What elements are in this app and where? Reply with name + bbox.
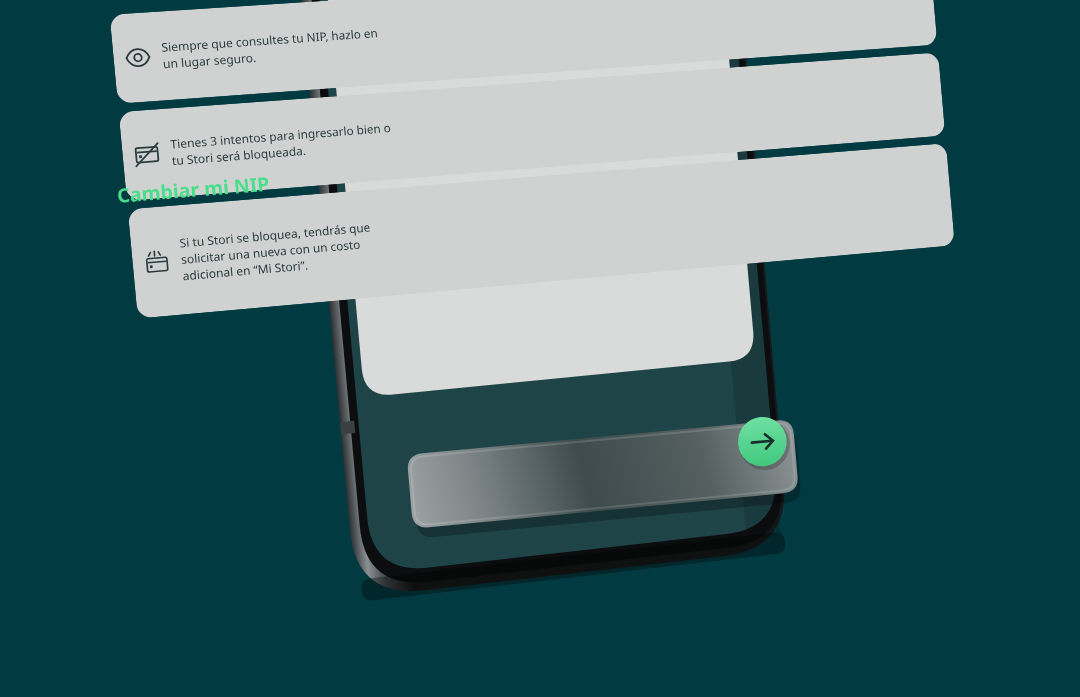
staticText: Si tu Stori se bloquea, tendrás que [179,219,371,252]
staticText: tu Stori será bloqueada. [171,142,308,169]
button[interactable]: Cambiar mi NIP [116,110,1080,697]
button[interactable]: Cambiar mi NIP [0,0,1080,697]
staticText: un lugar seguro. [162,49,257,72]
button[interactable]: Siempre que consultes tu NIP, hazlo en [109,0,937,104]
staticText: solicitar una nueva con un costo [180,236,361,268]
staticText: Siempre que consultes tu NIP, hazlo en [161,25,379,56]
staticText: Tienes 3 intentos para ingresarlo bien o [170,120,392,153]
staticText: adicional en “Mi Stori”. [182,257,309,284]
button[interactable]: Tienes 3 intentos para ingresarlo bien o [119,52,945,201]
button[interactable]: Si tu Stori se bloquea, tendrás que [128,143,955,319]
staticText: Cambiar mi NIP [116,170,271,209]
staticText: a NIP [101,0,922,9]
